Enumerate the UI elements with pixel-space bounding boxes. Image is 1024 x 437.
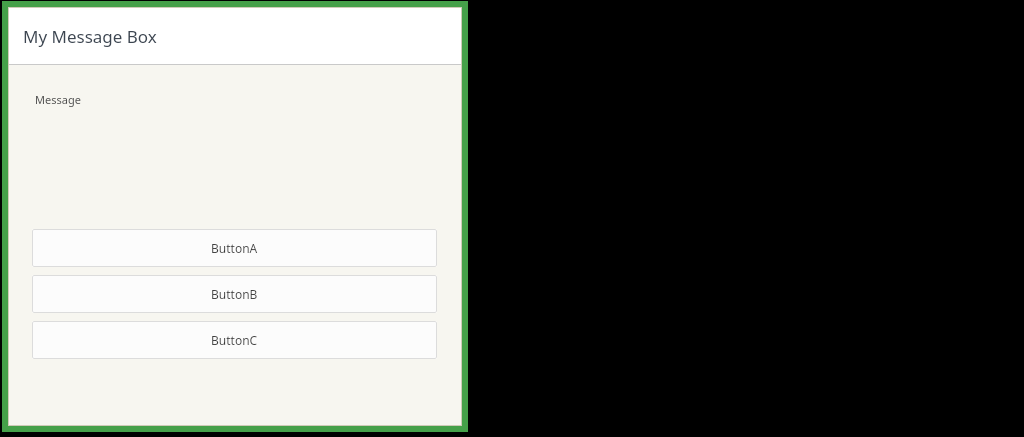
staticText: My Message Box [23,25,157,48]
button[interactable]: ButtonA [32,229,437,267]
staticText: ButtonA [211,240,258,256]
staticText: ButtonB [211,286,258,302]
staticText: ButtonC [211,332,258,348]
button[interactable]: ButtonC [32,321,437,359]
staticText: Message [35,92,81,107]
button[interactable]: ButtonB [32,275,437,313]
